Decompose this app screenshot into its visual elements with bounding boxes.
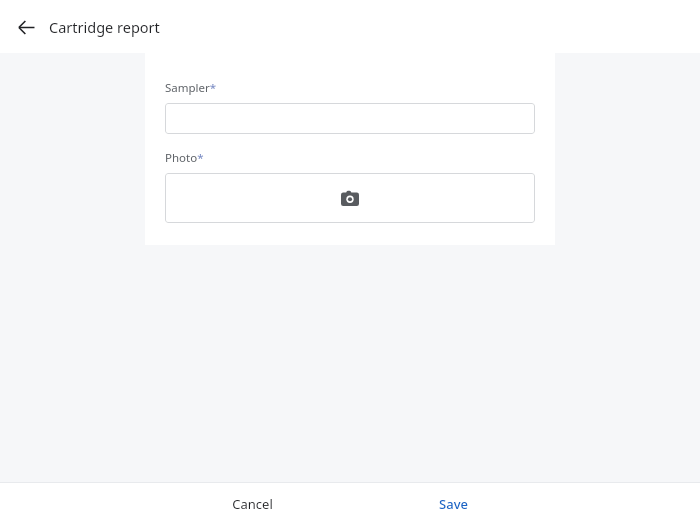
staticText: Sampler* [165, 80, 217, 96]
button[interactable]: Back [6, 7, 46, 47]
button[interactable] [165, 103, 535, 134]
staticText: Save [439, 495, 468, 513]
button[interactable]: Cancel [207, 483, 297, 525]
button[interactable]: Save [408, 483, 498, 525]
staticText: Photo* [165, 150, 204, 166]
staticText: Cartridge report [49, 17, 160, 37]
button[interactable]: Take photo [165, 173, 535, 223]
staticText: Cancel [232, 495, 273, 513]
